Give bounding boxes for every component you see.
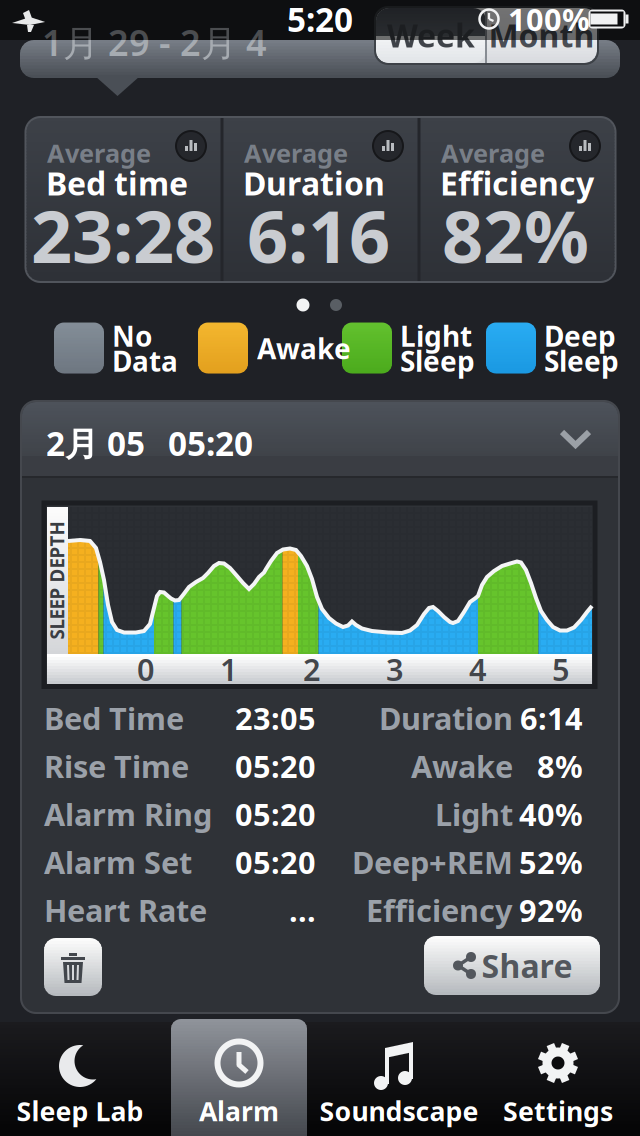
- button[interactable]: Settings: [478, 1022, 638, 1136]
- button[interactable]: 2月 05: [22, 402, 618, 478]
- staticText: 05:20: [168, 421, 253, 465]
- staticText: Settings: [503, 1093, 613, 1129]
- staticText: Deep+REM: [352, 842, 513, 882]
- staticText: 05:20: [235, 794, 316, 834]
- staticText: Soundscape: [319, 1093, 478, 1129]
- staticText: 5: [552, 649, 570, 689]
- staticText: Month: [488, 14, 594, 56]
- staticText: 92%: [519, 890, 583, 930]
- staticText: Deep: [544, 317, 616, 355]
- staticText: Duration: [379, 698, 513, 738]
- staticText: 1月 29 - 2月 4: [42, 18, 267, 66]
- staticText: 6:16: [247, 187, 390, 283]
- staticText: Efficiency: [440, 162, 594, 204]
- staticText: 2月 05: [46, 421, 145, 465]
- staticText: 40%: [519, 794, 583, 834]
- staticText: 05:20: [235, 842, 316, 882]
- button[interactable]: Delete: [44, 938, 102, 996]
- staticText: 6:14: [520, 698, 583, 738]
- button[interactable]: Sleep Lab: [0, 1022, 160, 1136]
- staticText: Sleep: [400, 342, 475, 380]
- staticText: 82%: [442, 187, 589, 283]
- staticText: 52%: [519, 842, 583, 882]
- staticText: Average: [244, 136, 348, 170]
- button[interactable]: Month: [486, 8, 597, 63]
- staticText: SLEEP DEPTH: [0, 568, 116, 593]
- button[interactable]: Statistics: [570, 131, 600, 161]
- staticText: 0: [137, 649, 155, 689]
- staticText: Awake: [411, 746, 513, 786]
- staticText: 2: [303, 649, 321, 689]
- staticText: 05:20: [235, 746, 316, 786]
- staticText: 8%: [537, 746, 583, 786]
- staticText: Duration: [243, 162, 385, 204]
- button[interactable]: Week: [376, 8, 486, 63]
- staticText: Share: [481, 944, 572, 987]
- staticText: No: [112, 317, 153, 355]
- staticText: Awake: [257, 330, 351, 367]
- button[interactable]: Statistics: [373, 131, 403, 161]
- staticText: 3: [386, 649, 404, 689]
- staticText: Heart Rate: [44, 890, 207, 930]
- staticText: Rise Time: [44, 746, 189, 786]
- staticText: Average: [47, 136, 151, 170]
- staticText: Sleep Lab: [16, 1093, 143, 1129]
- staticText: Bed time: [46, 162, 188, 204]
- staticText: ...: [289, 890, 316, 930]
- staticText: Alarm Ring: [44, 794, 212, 834]
- staticText: Light: [435, 794, 513, 834]
- staticText: 23:28: [31, 187, 215, 283]
- button[interactable]: Share: [424, 936, 600, 995]
- button[interactable]: Alarm: [159, 1022, 319, 1136]
- button[interactable]: Statistics: [176, 131, 206, 161]
- staticText: Data: [112, 342, 178, 380]
- staticText: 100%: [508, 0, 590, 39]
- staticText: Alarm Set: [44, 842, 192, 882]
- staticText: Bed Time: [44, 698, 184, 738]
- staticText: 23:05: [235, 698, 316, 738]
- staticText: Light: [400, 317, 472, 355]
- staticText: Week: [387, 14, 475, 56]
- staticText: Efficiency: [366, 890, 513, 930]
- staticText: Sleep: [544, 342, 619, 380]
- staticText: Alarm: [199, 1093, 279, 1129]
- staticText: 1: [220, 649, 238, 689]
- button[interactable]: Soundscape: [319, 1022, 479, 1136]
- staticText: 4: [469, 649, 487, 689]
- staticText: Average: [441, 136, 545, 170]
- staticText: 5:20: [287, 0, 353, 41]
